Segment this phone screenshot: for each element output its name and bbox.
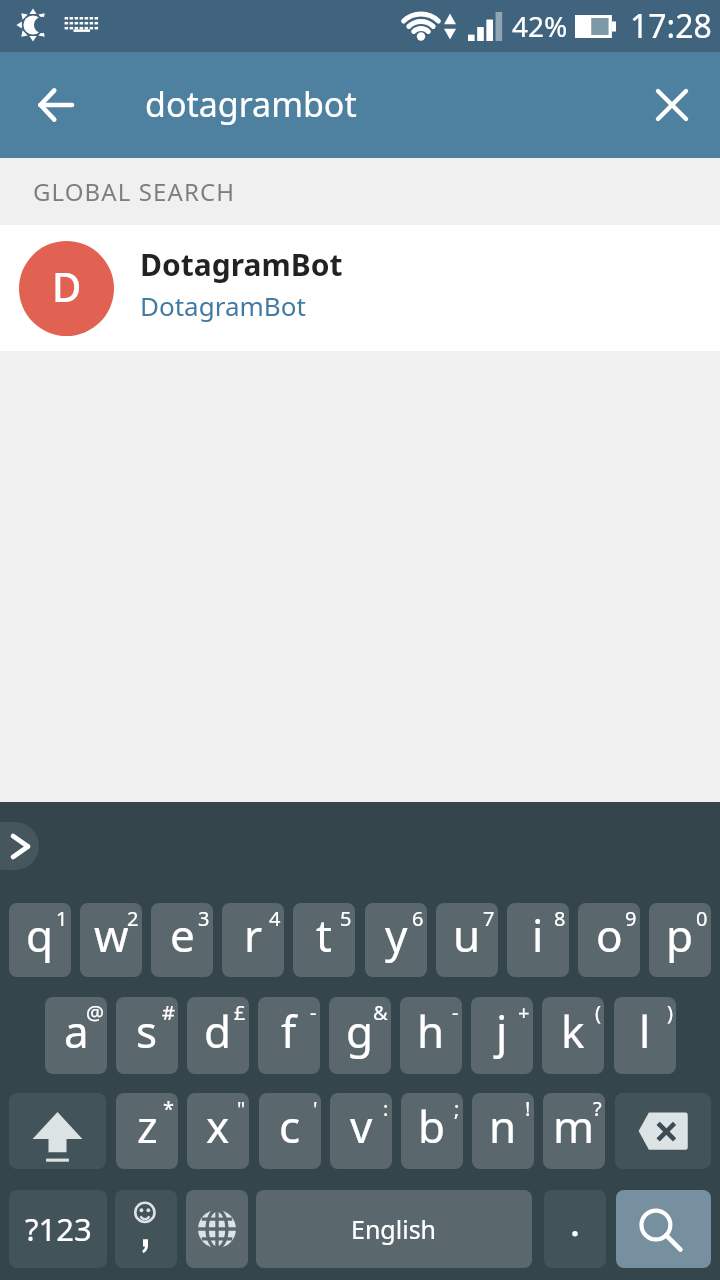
staticText: y bbox=[385, 905, 408, 965]
staticText: q bbox=[26, 905, 54, 965]
staticText: 5 bbox=[340, 905, 352, 932]
staticText: 4 bbox=[269, 905, 281, 932]
staticText: 1 bbox=[56, 905, 68, 932]
staticText: d bbox=[204, 1001, 232, 1061]
staticText: ; bbox=[454, 1095, 460, 1122]
button[interactable]: English bbox=[256, 1190, 532, 1268]
button[interactable]: u bbox=[436, 903, 498, 977]
button[interactable]: f bbox=[258, 997, 320, 1074]
button[interactable]: z bbox=[116, 1093, 178, 1169]
button[interactable]: w bbox=[80, 903, 142, 977]
staticText: f bbox=[281, 1001, 297, 1061]
button[interactable]: s bbox=[116, 997, 178, 1074]
button[interactable]: d bbox=[187, 997, 249, 1074]
button[interactable]: c bbox=[259, 1093, 321, 1169]
button[interactable]: Back bbox=[19, 68, 93, 142]
button[interactable]: Period bbox=[544, 1190, 606, 1268]
button[interactable]: a bbox=[45, 997, 107, 1074]
staticText: dotagrambot bbox=[145, 81, 357, 127]
button[interactable]: Change keyboard language bbox=[186, 1190, 248, 1268]
button[interactable]: Backspace bbox=[615, 1093, 711, 1169]
staticText: m bbox=[553, 1096, 595, 1156]
staticText: v bbox=[350, 1096, 373, 1156]
button[interactable]: m bbox=[543, 1093, 605, 1169]
staticText: DotagramBot bbox=[140, 244, 343, 285]
staticText: GLOBAL SEARCH bbox=[33, 175, 236, 208]
button[interactable]: Search bbox=[616, 1190, 711, 1268]
staticText: & bbox=[373, 999, 388, 1026]
button[interactable]: p bbox=[649, 903, 711, 977]
staticText: 17:28 bbox=[630, 4, 712, 48]
staticText: p bbox=[666, 905, 694, 965]
staticText: + bbox=[518, 999, 530, 1026]
staticText: j bbox=[496, 1001, 508, 1061]
staticText: 0 bbox=[696, 905, 708, 932]
staticText: o bbox=[596, 905, 623, 965]
staticText: e bbox=[170, 905, 195, 965]
staticText: 42% bbox=[512, 7, 568, 45]
staticText: - bbox=[452, 999, 459, 1026]
button[interactable]: n bbox=[472, 1093, 534, 1169]
button[interactable]: i bbox=[507, 903, 569, 977]
staticText: u bbox=[453, 905, 481, 965]
staticText: w bbox=[94, 905, 129, 965]
staticText: 6 bbox=[412, 905, 424, 932]
staticText: k bbox=[561, 1001, 585, 1061]
button[interactable]: Expand suggestions bbox=[0, 822, 39, 870]
staticText: English bbox=[351, 1212, 437, 1246]
button[interactable]: g bbox=[329, 997, 391, 1074]
staticText: i bbox=[532, 905, 544, 965]
staticText: z bbox=[137, 1096, 158, 1156]
staticText: s bbox=[136, 1001, 158, 1061]
button[interactable]: t bbox=[293, 903, 355, 977]
staticText: ( bbox=[595, 999, 601, 1026]
button[interactable]: h bbox=[400, 997, 462, 1074]
staticText: n bbox=[489, 1096, 517, 1156]
button[interactable]: y bbox=[365, 903, 427, 977]
staticText: 9 bbox=[625, 905, 637, 932]
button[interactable]: ?123 bbox=[9, 1190, 107, 1268]
staticText: a bbox=[64, 1001, 89, 1061]
staticText: ! bbox=[525, 1095, 531, 1122]
staticText: D bbox=[52, 259, 82, 313]
button[interactable]: D bbox=[0, 225, 720, 351]
staticText: # bbox=[162, 999, 175, 1026]
button[interactable]: x bbox=[187, 1093, 249, 1169]
button[interactable]: b bbox=[401, 1093, 463, 1169]
staticText: c bbox=[279, 1096, 301, 1156]
button[interactable]: r bbox=[222, 903, 284, 977]
staticText: b bbox=[418, 1096, 446, 1156]
button[interactable]: j bbox=[471, 997, 533, 1074]
button[interactable]: k bbox=[542, 997, 604, 1074]
staticText: DotagramBot bbox=[140, 288, 306, 323]
staticText: 7 bbox=[483, 905, 495, 932]
staticText: - bbox=[310, 999, 317, 1026]
staticText: g bbox=[346, 1001, 374, 1061]
staticText: 3 bbox=[198, 905, 210, 932]
staticText: ? bbox=[593, 1095, 602, 1122]
button[interactable]: e bbox=[151, 903, 213, 977]
staticText: £ bbox=[234, 999, 246, 1026]
staticText: 8 bbox=[554, 905, 566, 932]
staticText: ?123 bbox=[25, 1208, 92, 1250]
staticText: 2 bbox=[127, 905, 139, 932]
staticText: ' bbox=[313, 1095, 318, 1122]
button[interactable]: Clear search bbox=[635, 68, 709, 142]
staticText: t bbox=[316, 905, 332, 965]
staticText: @ bbox=[86, 999, 104, 1026]
button[interactable]: l bbox=[614, 997, 676, 1074]
button[interactable]: Emoji and comma bbox=[115, 1190, 177, 1268]
button[interactable]: v bbox=[330, 1093, 392, 1169]
staticText: ) bbox=[667, 999, 673, 1026]
staticText: r bbox=[244, 905, 263, 965]
staticText: l bbox=[639, 1001, 651, 1061]
button[interactable]: Shift bbox=[9, 1093, 106, 1169]
staticText: : bbox=[383, 1095, 389, 1122]
staticText: x bbox=[206, 1096, 230, 1156]
staticText: " bbox=[237, 1095, 246, 1122]
button[interactable]: o bbox=[578, 903, 640, 977]
staticText: * bbox=[163, 1095, 175, 1122]
button[interactable]: q bbox=[9, 903, 71, 977]
staticText: h bbox=[417, 1001, 445, 1061]
